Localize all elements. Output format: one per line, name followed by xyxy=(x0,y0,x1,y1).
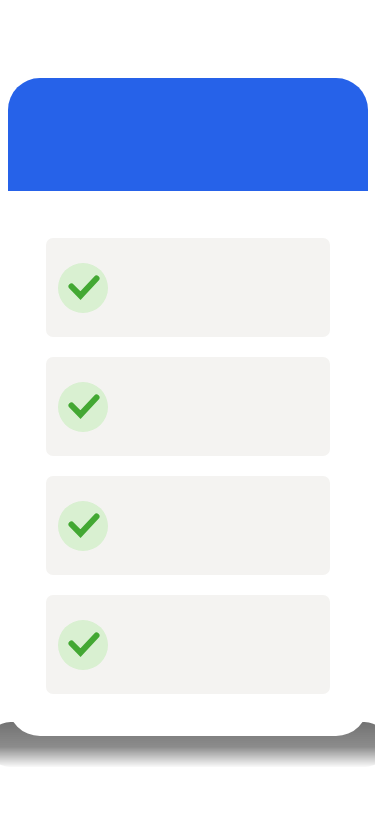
other: Completed xyxy=(58,620,108,670)
other: Completed xyxy=(58,382,108,432)
other: Completed xyxy=(58,263,108,313)
button[interactable]: Completed xyxy=(46,357,330,456)
other: Completed xyxy=(58,501,108,551)
button[interactable]: Completed xyxy=(46,238,330,337)
button[interactable]: Completed xyxy=(46,476,330,575)
button[interactable]: Completed xyxy=(46,595,330,694)
